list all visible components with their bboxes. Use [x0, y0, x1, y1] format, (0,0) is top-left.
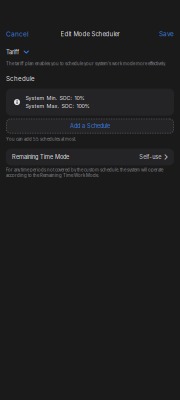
staticText: For any time periods not covered by the …: [6, 167, 163, 172]
staticText: according to the Remaining Time Work Mod…: [6, 173, 99, 178]
staticText: You can add 55 schedules at most.: [6, 137, 76, 142]
button[interactable]: Add a Schedule: [6, 119, 174, 134]
staticText: Edit Mode Scheduler: [60, 30, 119, 38]
staticText: Tariff: [6, 48, 19, 56]
staticText: Schedule: [6, 75, 35, 83]
button[interactable]: Remaining Time Mode: [6, 149, 174, 165]
staticText: The tariff plan enables you to schedule …: [6, 61, 166, 66]
staticText: Add a Schedule: [70, 123, 110, 129]
button[interactable]: Tariff: [0, 48, 180, 56]
staticText: Remaining Time Mode: [12, 154, 69, 160]
staticText: System Max. SOC: 100%: [25, 103, 89, 109]
staticText: Save: [159, 30, 174, 38]
staticText: Cancel: [6, 30, 29, 38]
button[interactable]: Save: [153, 27, 180, 41]
staticText: System Min. SOC: 10%: [25, 95, 84, 101]
button[interactable]: Cancel: [0, 27, 35, 41]
staticText: Self-use: [139, 154, 161, 160]
